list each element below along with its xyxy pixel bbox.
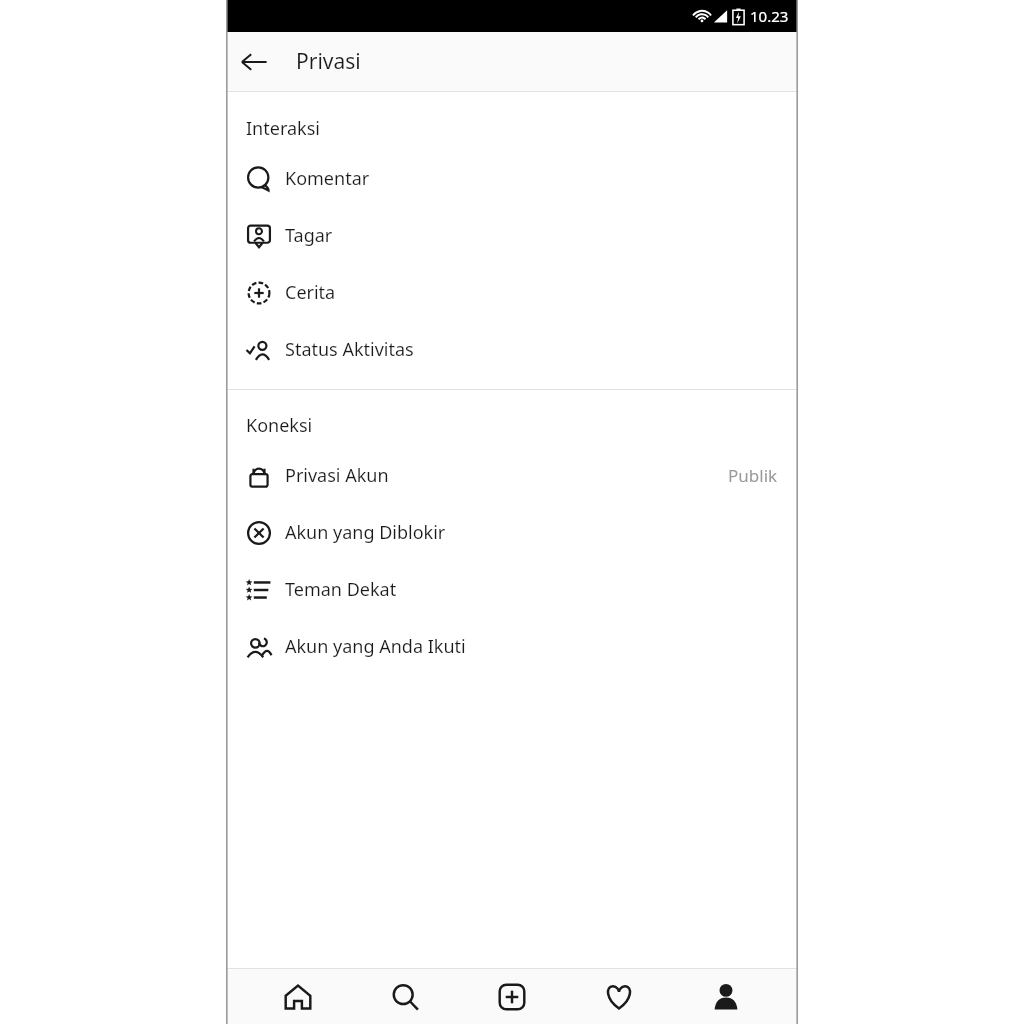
button[interactable]: Activity	[584, 969, 654, 1024]
staticText: Privasi	[296, 47, 361, 76]
staticText: Interaksi	[246, 116, 320, 141]
staticText: Akun yang Diblokir	[285, 520, 446, 545]
staticText: Tagar	[285, 223, 333, 248]
button[interactable]: Tagar	[226, 207, 798, 264]
button[interactable]: Back	[226, 34, 282, 90]
button[interactable]: Cerita	[226, 264, 798, 321]
button[interactable]: Home	[263, 969, 333, 1024]
button[interactable]: Akun yang Diblokir	[226, 504, 798, 561]
button[interactable]: Teman Dekat	[226, 561, 798, 618]
staticText: 10.23	[750, 6, 789, 26]
button[interactable]: Akun yang Anda Ikuti	[226, 618, 798, 675]
staticText: Komentar	[285, 166, 370, 191]
staticText: Koneksi	[246, 413, 313, 438]
button[interactable]: Search	[370, 969, 440, 1024]
staticText: Privasi Akun	[285, 463, 389, 488]
staticText: Publik	[728, 464, 778, 487]
staticText: Teman Dekat	[285, 577, 397, 602]
button[interactable]: Status Aktivitas	[226, 321, 798, 378]
button[interactable]: Add post	[477, 969, 547, 1024]
button[interactable]: Komentar	[226, 150, 798, 207]
button[interactable]: Profile	[691, 969, 761, 1024]
button[interactable]: Privasi Akun	[226, 447, 798, 504]
staticText: Status Aktivitas	[285, 337, 414, 362]
staticText: Akun yang Anda Ikuti	[285, 634, 466, 659]
staticText: Cerita	[285, 280, 336, 305]
